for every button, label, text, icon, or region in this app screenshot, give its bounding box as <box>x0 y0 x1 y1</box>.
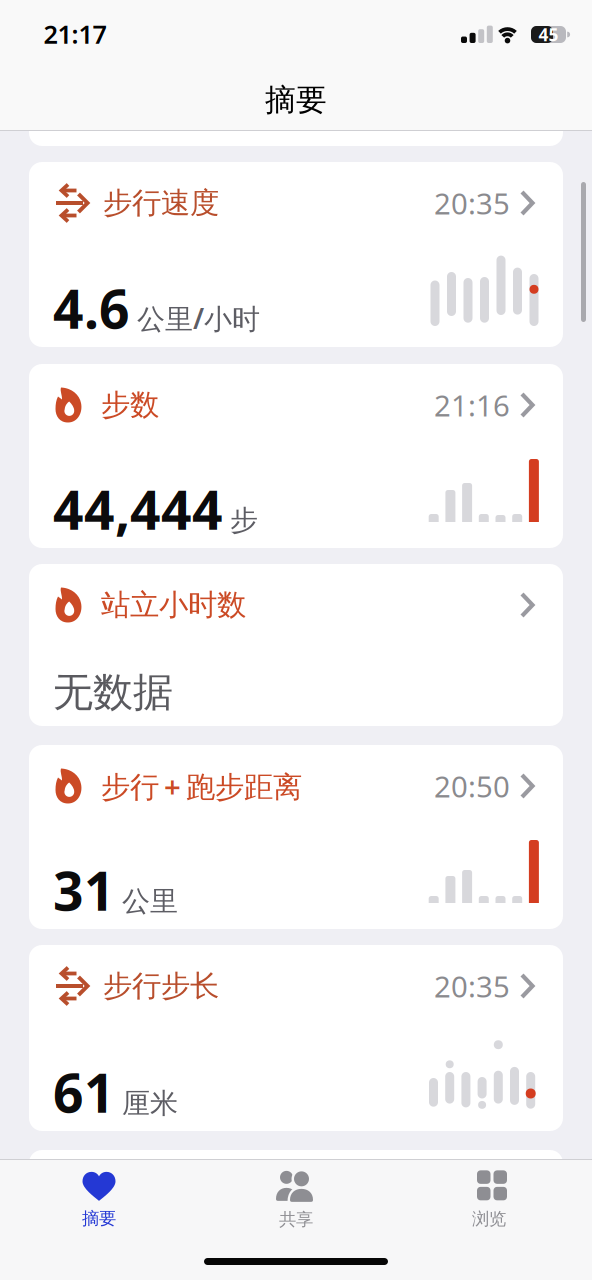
staticText: 61 <box>53 1057 115 1127</box>
staticText: 公里 <box>122 884 178 919</box>
button[interactable]: 步行速度 <box>29 162 563 347</box>
staticText: 20:35 <box>434 183 510 222</box>
staticText: 步行速度 <box>103 185 219 221</box>
staticText: 45 <box>538 23 558 46</box>
staticText: 20:50 <box>434 766 510 805</box>
staticText: 共享 <box>279 1209 313 1230</box>
staticText: 31 <box>53 855 115 925</box>
staticText: 步行 + 跑步距离 <box>101 766 302 805</box>
button[interactable]: 共享 <box>216 1162 376 1238</box>
staticText: 4.6 <box>53 273 130 343</box>
staticText: 公里/小时 <box>137 300 260 337</box>
staticText: 步 <box>230 503 258 538</box>
staticText: 无数据 <box>53 668 173 717</box>
button[interactable]: 浏览 <box>409 1162 569 1238</box>
staticText: 摘要 <box>265 81 327 119</box>
staticText: 21:17 <box>43 17 106 51</box>
staticText: 站立小时数 <box>101 587 246 623</box>
staticText: 步行步长 <box>103 968 219 1004</box>
staticText: 20:35 <box>434 966 510 1005</box>
staticText: 浏览 <box>472 1208 506 1230</box>
button[interactable]: 步行步长 <box>29 945 563 1131</box>
button[interactable]: 摘要 <box>19 1162 179 1238</box>
staticText: 步数 <box>101 387 159 423</box>
button[interactable]: 站立小时数 <box>29 564 563 726</box>
staticText: 44,444 <box>53 474 223 544</box>
button[interactable]: 步行 + 跑步距离 <box>29 745 563 929</box>
staticText: 厘米 <box>122 1086 178 1121</box>
staticText: 21:16 <box>434 385 510 424</box>
button[interactable]: 步数 <box>29 364 563 548</box>
staticText: 摘要 <box>82 1208 116 1229</box>
